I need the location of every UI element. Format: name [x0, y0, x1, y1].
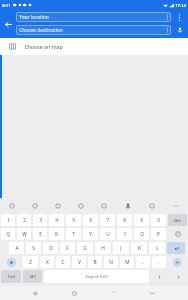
- staticText: T: [72, 231, 75, 238]
- button[interactable]: G: [77, 242, 93, 254]
- button[interactable]: Voice input: [116, 198, 140, 213]
- button[interactable]: Recents: [27, 286, 43, 300]
- button[interactable]: Q: [1, 228, 15, 240]
- button[interactable]: U: [100, 228, 115, 240]
- button[interactable]: Back: [0, 16, 16, 32]
- button[interactable]: 4: [49, 214, 64, 226]
- staticText: 4: [55, 217, 58, 224]
- staticText: D: [49, 245, 53, 252]
- button[interactable]: Emoji: [168, 228, 187, 240]
- button[interactable]: ,: [136, 256, 150, 268]
- staticText: R: [55, 231, 58, 238]
- button[interactable]: Del: [168, 214, 187, 226]
- button[interactable]: Home: [66, 286, 82, 300]
- staticText: ,: [142, 259, 144, 266]
- button[interactable]: 0: [151, 214, 166, 226]
- button[interactable]: W: [17, 228, 31, 240]
- staticText: U: [106, 231, 110, 238]
- button[interactable]: 7: [100, 214, 115, 226]
- staticText: H: [101, 245, 105, 252]
- button[interactable]: 2: [17, 214, 31, 226]
- button[interactable]: Backspace: [168, 256, 187, 268]
- staticText: E: [39, 231, 42, 238]
- button[interactable]: Ctrl: [1, 270, 21, 283]
- button[interactable]: H: [95, 242, 111, 254]
- button[interactable]: Hide keyboard: [144, 286, 160, 300]
- staticText: L: [156, 245, 159, 252]
- staticText: Z: [29, 259, 32, 266]
- button[interactable]: D: [43, 242, 58, 254]
- button[interactable]: F: [60, 242, 75, 254]
- button[interactable]: T: [66, 228, 81, 240]
- button[interactable]: Choose on map: [0, 38, 188, 55]
- button[interactable]: J: [113, 242, 129, 254]
- button[interactable]: K: [131, 242, 147, 254]
- button[interactable]: .: [152, 256, 166, 268]
- button[interactable]: R: [49, 228, 64, 240]
- button[interactable]: 8: [117, 214, 132, 226]
- button[interactable]: B: [88, 256, 102, 268]
- button[interactable]: O: [134, 228, 149, 240]
- button[interactable]: 1: [1, 214, 15, 226]
- button[interactable]: Voice search: [172, 25, 187, 35]
- button[interactable]: N: [104, 256, 118, 268]
- staticText: Del: [174, 218, 181, 223]
- button[interactable]: 3: [33, 214, 47, 226]
- staticText: A: [15, 245, 19, 252]
- staticText: X: [46, 259, 49, 266]
- button[interactable]: X: [40, 256, 54, 268]
- button[interactable]: Sticker: [23, 198, 46, 213]
- button[interactable]: Clipboard: [46, 198, 69, 213]
- staticText: 7: [106, 217, 109, 224]
- staticText: 5: [72, 217, 75, 224]
- button[interactable]: 6: [83, 214, 98, 226]
- staticText: Choose destination: [19, 27, 63, 34]
- staticText: 2: [23, 217, 26, 224]
- staticText: Ctrl: [8, 274, 15, 279]
- button[interactable]: Y: [83, 228, 98, 240]
- button[interactable]: L: [149, 242, 165, 254]
- staticText: W: [22, 231, 27, 238]
- staticText: 17:14: [175, 2, 186, 8]
- staticText: .: [158, 259, 160, 266]
- button[interactable]: Translate: [69, 198, 92, 213]
- button[interactable]: 5: [66, 214, 81, 226]
- staticText: Q: [6, 231, 10, 238]
- staticText: P: [157, 231, 160, 238]
- button[interactable]: Choose destination: [16, 25, 171, 35]
- button[interactable]: Space: [44, 270, 149, 283]
- button[interactable]: S: [26, 242, 41, 254]
- button[interactable]: Z: [23, 256, 38, 268]
- staticText: !#1: [30, 274, 36, 279]
- button[interactable]: E: [33, 228, 47, 240]
- button[interactable]: 9: [134, 214, 149, 226]
- button[interactable]: Search: [92, 198, 116, 213]
- staticText: G: [83, 245, 87, 252]
- button[interactable]: Move cursor left: [151, 270, 168, 283]
- button[interactable]: Settings: [140, 198, 164, 213]
- staticText: Choose on map: [24, 43, 63, 50]
- button[interactable]: P: [151, 228, 166, 240]
- button[interactable]: I: [117, 228, 132, 240]
- button[interactable]: Your location: [16, 12, 171, 22]
- staticText: 3: [39, 217, 42, 224]
- button[interactable]: V: [72, 256, 86, 268]
- staticText: ‹: [158, 272, 161, 282]
- button[interactable]: Shift: [1, 256, 21, 268]
- button[interactable]: Back: [105, 286, 121, 300]
- staticText: J: [120, 245, 122, 252]
- staticText: 9: [140, 217, 143, 224]
- button[interactable]: !#1: [23, 270, 42, 283]
- staticText: Your location: [19, 14, 49, 21]
- button[interactable]: Enter: [167, 242, 185, 254]
- staticText: English (US): [85, 274, 108, 279]
- staticText: Y: [89, 231, 92, 238]
- button[interactable]: More: [164, 198, 188, 213]
- button[interactable]: A: [9, 242, 24, 254]
- button[interactable]: C: [56, 256, 70, 268]
- button[interactable]: Emoji: [0, 198, 23, 213]
- button[interactable]: Move cursor right: [170, 270, 187, 283]
- button[interactable]: More options: [172, 12, 187, 22]
- staticText: I: [124, 231, 126, 238]
- button[interactable]: M: [120, 256, 134, 268]
